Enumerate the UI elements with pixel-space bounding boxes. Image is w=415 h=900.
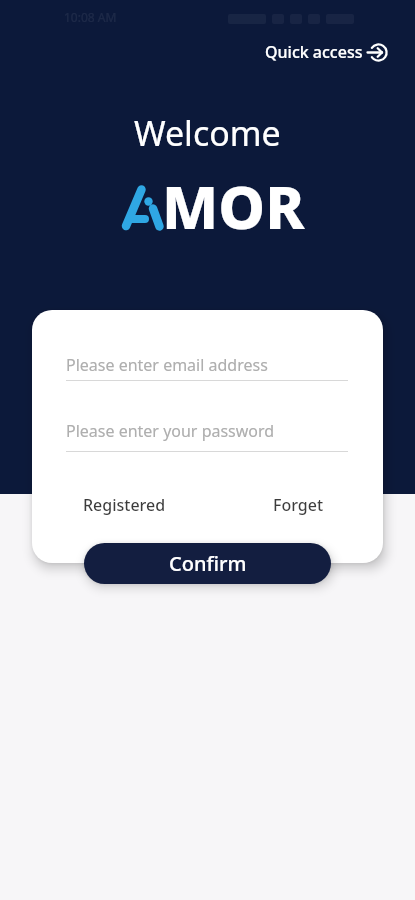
staticText: MOR <box>162 166 305 246</box>
button[interactable]: Quick access <box>265 41 388 63</box>
staticText: Welcome <box>134 110 281 156</box>
staticText: Confirm <box>169 550 247 577</box>
button[interactable]: Confirm <box>84 543 331 584</box>
button[interactable]: Registered <box>83 494 166 516</box>
button[interactable]: Forget <box>273 494 324 516</box>
button[interactable]: Please enter email address <box>66 354 268 376</box>
staticText: Quick access <box>265 41 363 63</box>
button[interactable]: Please enter your password <box>66 420 275 442</box>
staticText: 10:08 AM <box>64 9 117 25</box>
